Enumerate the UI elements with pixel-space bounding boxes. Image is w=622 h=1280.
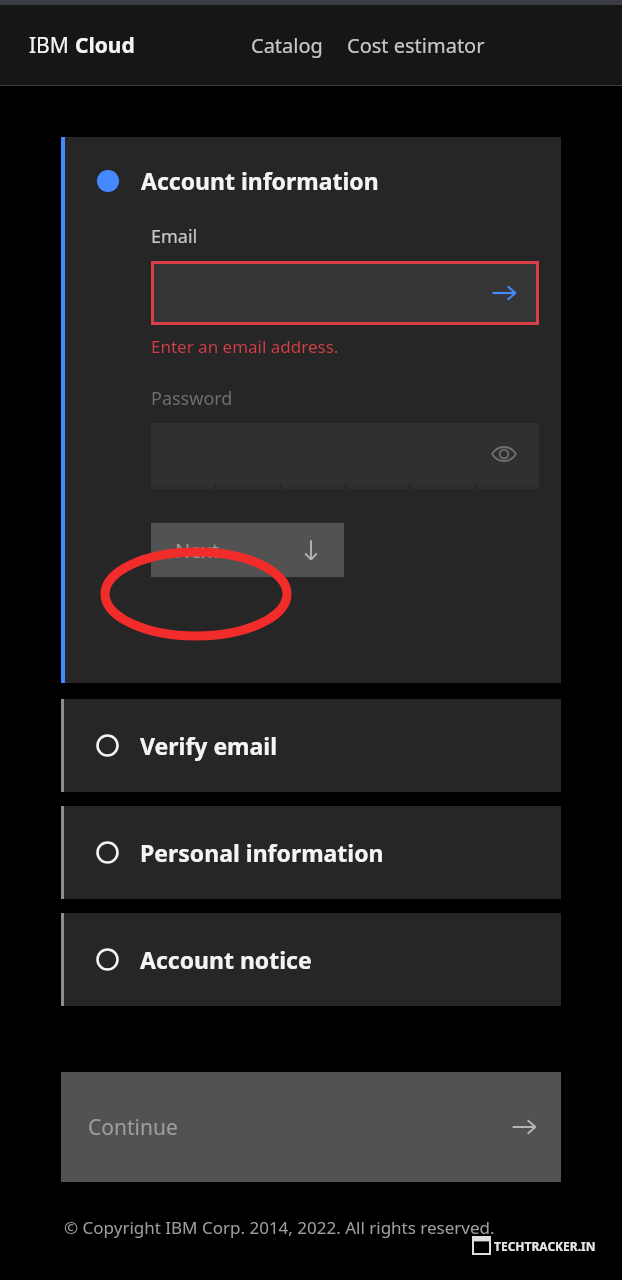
button[interactable]: Personal information [61, 806, 561, 899]
staticText: Continue [88, 1113, 178, 1142]
button[interactable]: Next [151, 523, 344, 577]
staticText: Enter an email address. [151, 335, 339, 358]
button[interactable]: Verify email [61, 699, 561, 792]
button[interactable]: Submit email [151, 261, 539, 325]
staticText: Next [175, 537, 219, 564]
other: Show password [491, 441, 517, 467]
staticText: TECHTRACKER.IN [494, 1238, 596, 1254]
button[interactable]: Account information [65, 165, 561, 196]
staticText: Cloud [75, 31, 135, 60]
staticText: IBM [29, 31, 75, 60]
other: Submit email [491, 280, 517, 306]
button[interactable]: Cost estimator [347, 32, 485, 59]
staticText: Cost estimator [347, 32, 485, 59]
staticText: © Copyright IBM Corp. 2014, 2022. All ri… [64, 1216, 495, 1239]
staticText: Account notice [140, 944, 312, 975]
button[interactable]: Continue [61, 1072, 561, 1182]
button[interactable]: IBM [29, 31, 135, 60]
staticText: Email [151, 224, 198, 249]
staticText: Password [151, 386, 233, 411]
button[interactable]: Catalog [251, 32, 323, 59]
staticText: Personal information [140, 837, 384, 868]
staticText: Verify email [140, 730, 278, 761]
staticText: Account information [141, 165, 379, 196]
button[interactable]: Show password [151, 423, 539, 485]
staticText: Catalog [251, 32, 323, 59]
button[interactable]: Account notice [61, 913, 561, 1006]
